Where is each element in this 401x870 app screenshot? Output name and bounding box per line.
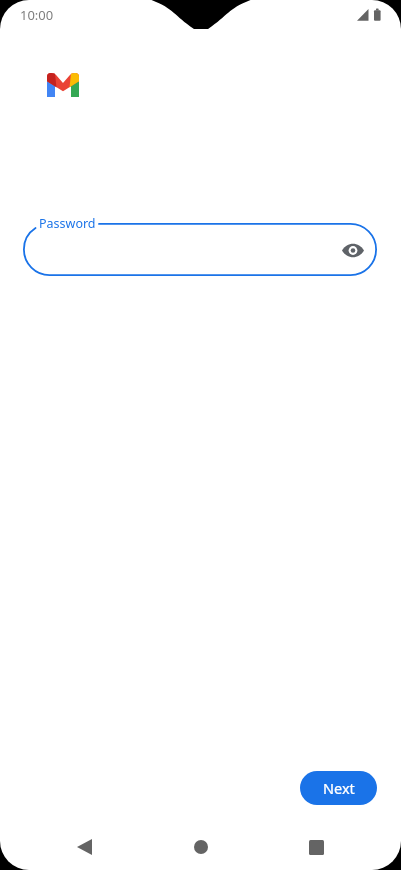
button[interactable]: Back bbox=[60, 832, 108, 862]
staticText: 10:00 bbox=[20, 6, 54, 24]
button[interactable]: Next bbox=[300, 771, 377, 805]
button[interactable]: Recent apps bbox=[292, 832, 340, 862]
button[interactable]: Home bbox=[177, 832, 225, 862]
staticText: Next bbox=[323, 778, 355, 798]
staticText: Password bbox=[39, 215, 96, 232]
button[interactable]: Show password bbox=[333, 230, 373, 270]
button[interactable]: Password bbox=[23, 223, 377, 276]
